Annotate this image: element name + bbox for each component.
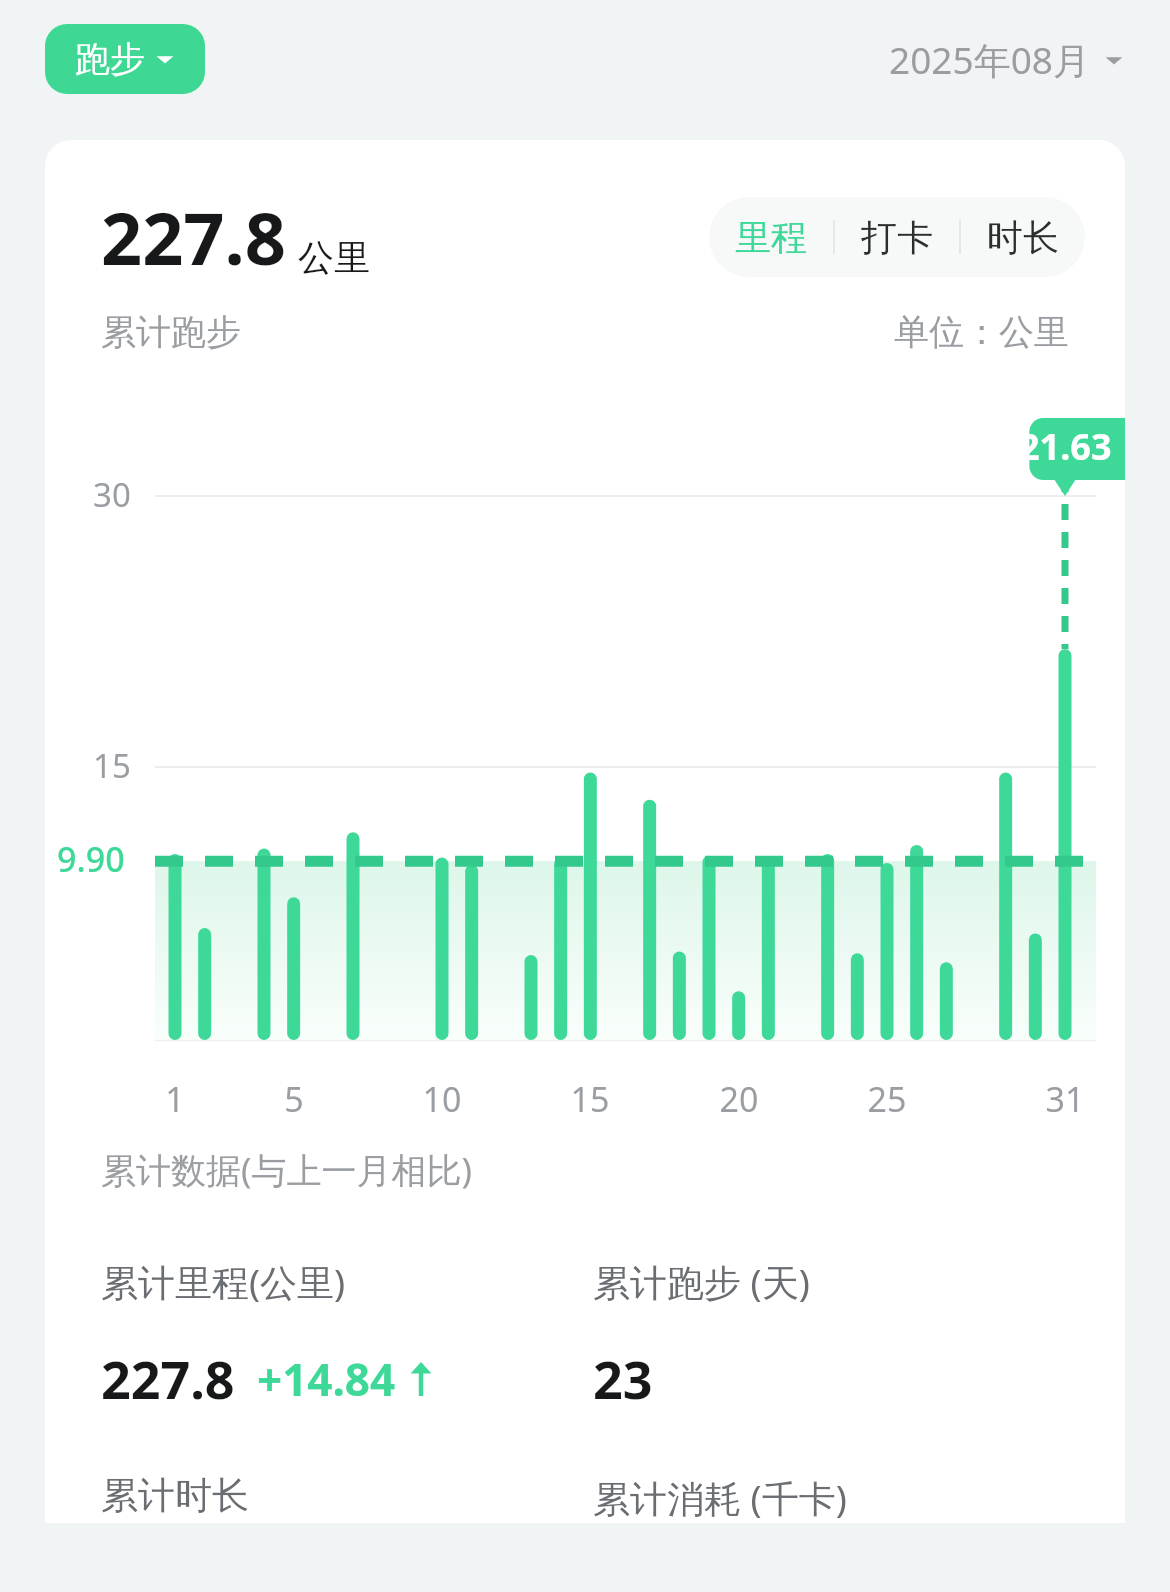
staticText: 20 [699, 1076, 779, 1122]
staticText: 累计数据(与上一月相比) [101, 1146, 473, 1194]
staticText: +14.84 [257, 1349, 396, 1409]
staticText: 打卡 [861, 215, 933, 260]
staticText: 25 [847, 1076, 927, 1122]
staticText: 21.63 [1019, 422, 1112, 471]
staticText: 累计消耗 (千卡) [593, 1472, 1085, 1523]
staticText: 里程 [735, 215, 807, 260]
staticText: 9.90 [57, 836, 125, 882]
button[interactable]: 里程 [709, 197, 833, 277]
staticText: 15 [550, 1076, 630, 1122]
button[interactable]: 时长 [961, 197, 1085, 277]
staticText: 1 [135, 1076, 215, 1122]
staticText: 累计跑步 [101, 310, 241, 354]
staticText: 15 [93, 743, 131, 788]
staticText: 30 [93, 472, 131, 517]
staticText: 227.8 [101, 188, 286, 286]
staticText: 2025年08月 [889, 34, 1090, 85]
button[interactable]: 跑步 [45, 24, 205, 94]
staticText: 227.8 [101, 1343, 235, 1414]
staticText: 31 [1025, 1076, 1105, 1122]
button[interactable]: 2025年08月 [885, 24, 1128, 95]
button[interactable]: 打卡 [835, 197, 959, 277]
staticText: 单位：公里 [894, 310, 1069, 354]
staticText: 10 [402, 1076, 482, 1122]
staticText: 23 [593, 1343, 653, 1414]
staticText: 公里 [298, 235, 370, 280]
staticText: 时长 [987, 215, 1059, 260]
staticText: 累计跑步 (天) [593, 1256, 810, 1307]
staticText: 跑步 [75, 37, 145, 81]
staticText: 累计里程(公里) [101, 1256, 346, 1307]
staticText: 5 [254, 1076, 334, 1122]
staticText: 累计时长 [101, 1472, 593, 1519]
